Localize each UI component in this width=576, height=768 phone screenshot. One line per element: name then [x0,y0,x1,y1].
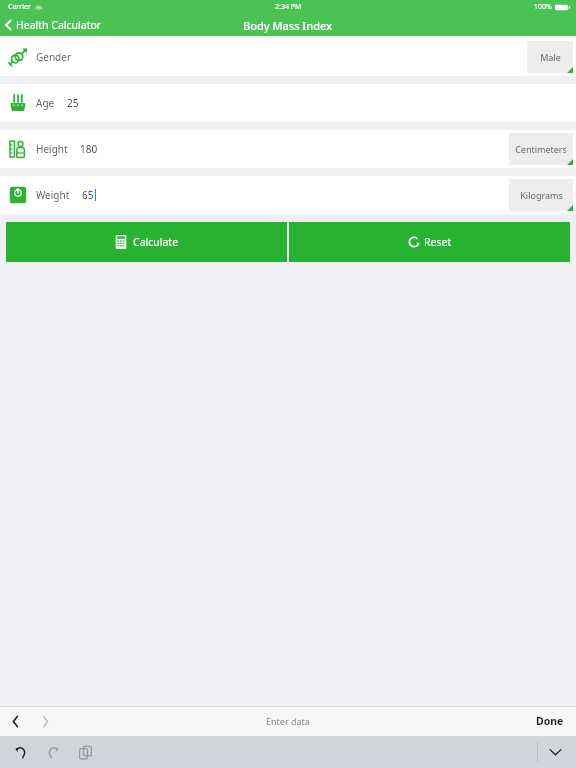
staticText: Done [536,714,564,728]
staticText: Carrier [8,2,31,12]
staticText: Kilograms [520,189,563,201]
staticText: 65 [82,188,94,202]
staticText: Height [36,142,68,156]
staticText: Weight [36,188,70,202]
staticText: Age [36,96,55,110]
button[interactable]: Height [0,130,576,168]
button[interactable]: Redo [40,739,66,765]
button[interactable]: Age [0,84,576,122]
button[interactable]: Paste [72,739,98,765]
button[interactable]: Health Calculator [0,16,110,34]
staticText: 25 [67,96,79,110]
button[interactable]: Calculate [6,222,287,262]
button[interactable]: Centimeters [509,133,573,165]
button[interactable]: Male [527,41,573,73]
staticText: Calculate [133,235,179,249]
button[interactable]: Kilograms [509,179,573,211]
button[interactable]: Hide keyboard [538,737,572,767]
button[interactable]: Next field [30,706,60,736]
staticText: Male [540,51,561,63]
staticText: Gender [36,50,72,64]
button[interactable]: Previous field [0,706,30,736]
button[interactable]: Weight [0,176,576,214]
staticText: Body Mass Index [243,18,333,33]
button[interactable]: Done [524,708,576,734]
staticText: 100% [534,2,552,12]
staticText: 180 [80,142,98,156]
staticText: 2:34 PM [275,2,302,12]
button[interactable]: Reset [289,222,570,262]
staticText: Health Calculator [16,18,102,32]
button[interactable]: Gender [0,38,576,76]
staticText: Enter data [266,715,310,727]
button[interactable]: Undo [8,739,34,765]
staticText: Centimeters [515,143,567,155]
staticText: Reset [424,235,452,249]
